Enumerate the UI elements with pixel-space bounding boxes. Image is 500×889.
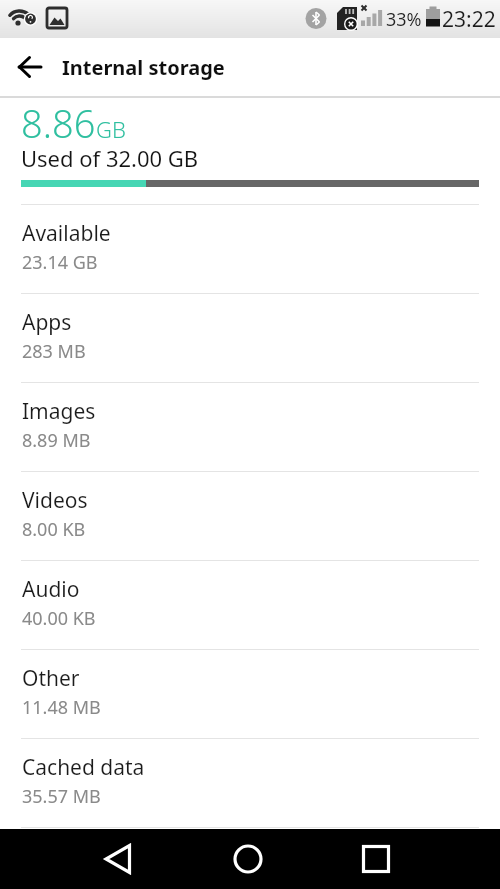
button[interactable]: Images bbox=[0, 383, 500, 472]
staticText: Available bbox=[22, 219, 111, 248]
staticText: 8.86 bbox=[21, 97, 96, 149]
staticText: 283 MB bbox=[22, 339, 86, 364]
staticText: Audio bbox=[22, 575, 80, 604]
staticText: 23.14 GB bbox=[22, 250, 98, 275]
button[interactable]: Other bbox=[0, 650, 500, 739]
staticText: GB bbox=[96, 114, 126, 144]
button[interactable]: Available bbox=[0, 205, 500, 294]
button[interactable] bbox=[344, 829, 408, 889]
staticText: Other bbox=[22, 664, 80, 693]
staticText: Used of 32.00 GB bbox=[21, 143, 199, 173]
staticText: 23:22 bbox=[442, 5, 496, 34]
button[interactable] bbox=[216, 829, 280, 889]
staticText: Internal storage bbox=[62, 54, 225, 81]
staticText: Cached data bbox=[22, 753, 145, 782]
staticText: 8.00 KB bbox=[22, 517, 86, 542]
staticText: 8.89 MB bbox=[22, 428, 91, 453]
button[interactable] bbox=[8, 45, 52, 89]
button[interactable]: Cached data bbox=[0, 739, 500, 828]
staticText: 33% bbox=[386, 7, 422, 32]
staticText: 11.48 MB bbox=[22, 695, 101, 720]
button[interactable]: Apps bbox=[0, 294, 500, 383]
staticText: 35.57 MB bbox=[22, 784, 101, 809]
staticText: Images bbox=[22, 397, 96, 426]
button[interactable]: Videos bbox=[0, 472, 500, 561]
staticText: Videos bbox=[22, 486, 88, 515]
button[interactable] bbox=[87, 829, 151, 889]
staticText: 40.00 KB bbox=[22, 606, 96, 631]
button[interactable]: Audio bbox=[0, 561, 500, 650]
staticText: Apps bbox=[22, 308, 72, 337]
